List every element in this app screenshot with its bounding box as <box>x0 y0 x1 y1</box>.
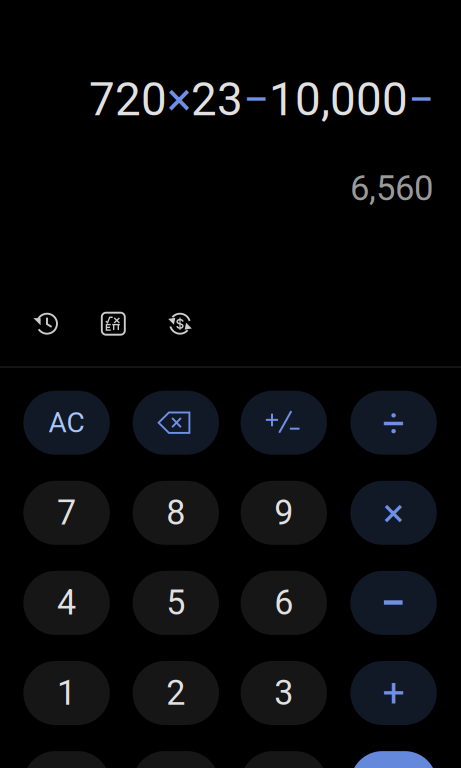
staticText: × <box>167 73 191 126</box>
staticText: × <box>383 490 404 536</box>
button[interactable]: History <box>33 311 59 337</box>
button[interactable]: Minus <box>350 571 437 635</box>
staticText: 720 <box>89 73 167 126</box>
button[interactable]: + <box>350 661 437 725</box>
staticText: 6,560 <box>350 168 433 209</box>
button[interactable]: 9 <box>241 481 327 545</box>
button[interactable]: Toggle sign <box>241 391 327 455</box>
staticText: AC <box>49 406 85 439</box>
staticText: 9 <box>274 493 293 533</box>
button[interactable]: Scientific mode <box>100 311 126 337</box>
button[interactable]: Currency converter <box>167 311 193 337</box>
staticText: 1 <box>57 673 76 713</box>
button[interactable]: 5 <box>133 571 219 635</box>
button[interactable]: Backspace <box>133 391 219 455</box>
staticText: 6 <box>274 583 293 623</box>
button[interactable]: 8 <box>133 481 219 545</box>
button[interactable]: 2 <box>133 661 219 725</box>
button[interactable]: 3 <box>241 661 327 725</box>
staticText: 10,000 <box>269 73 408 126</box>
button[interactable]: 6 <box>241 571 327 635</box>
button[interactable]: × <box>350 481 437 545</box>
button[interactable]: . <box>241 751 327 768</box>
button[interactable]: % <box>23 751 110 768</box>
button[interactable]: = <box>350 751 437 768</box>
staticText: − <box>408 73 434 126</box>
staticText: 5 <box>166 583 185 623</box>
staticText: 4 <box>57 583 76 623</box>
button[interactable]: 1 <box>23 661 110 725</box>
staticText: 23 <box>191 73 243 126</box>
button[interactable]: AC <box>23 391 110 455</box>
button[interactable]: 7 <box>23 481 110 545</box>
button[interactable]: 4 <box>23 571 110 635</box>
staticText: − <box>243 73 269 126</box>
staticText: 8 <box>166 493 185 533</box>
staticText: ÷ <box>383 400 405 446</box>
button[interactable]: 0 <box>133 751 219 768</box>
staticText: + <box>383 670 405 716</box>
staticText: 2 <box>166 673 185 713</box>
staticText: 3 <box>274 673 293 713</box>
staticText: 7 <box>57 493 76 533</box>
button[interactable]: ÷ <box>350 391 437 455</box>
